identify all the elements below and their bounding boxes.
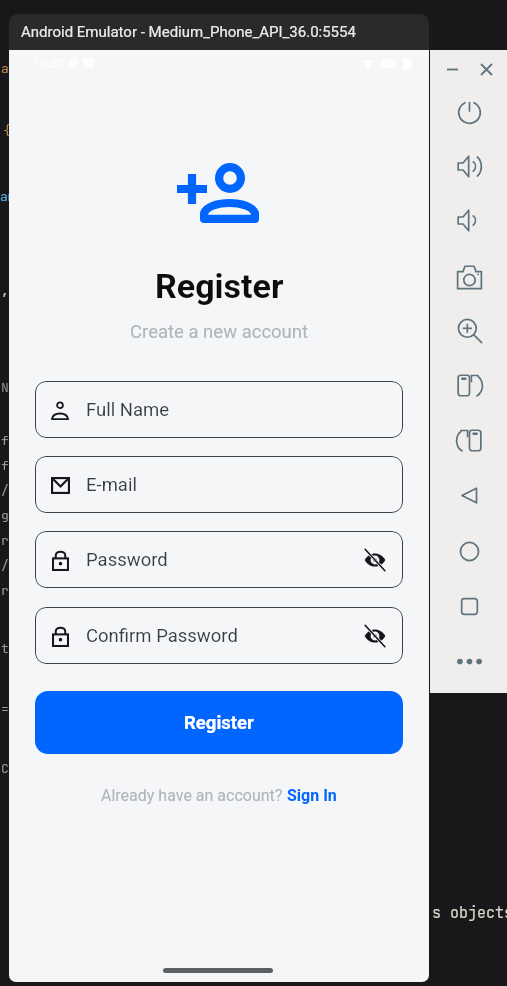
staticText: Create a new account: [130, 321, 309, 343]
staticText: a: [1, 60, 9, 77]
staticText: r: [1, 582, 9, 599]
button[interactable]: Rotate right: [450, 421, 488, 459]
staticText: /: [1, 557, 9, 574]
button[interactable]: Volume down: [450, 201, 488, 239]
button[interactable]: E-mail: [35, 456, 403, 513]
button[interactable]: Overview: [450, 587, 488, 625]
button[interactable]: Power: [450, 93, 488, 131]
staticText: Android Emulator - Medium_Phone_API_36.0…: [21, 23, 356, 41]
button[interactable]: Toggle password visibility: [361, 546, 389, 574]
button[interactable]: Take screenshot: [450, 257, 488, 295]
button[interactable]: Toggle password visibility: [361, 622, 389, 650]
button[interactable]: Rotate left: [450, 366, 488, 404]
button[interactable]: Full Name: [35, 381, 403, 438]
button[interactable]: Close: [472, 55, 500, 83]
staticText: Sign In: [287, 786, 337, 805]
button[interactable]: More: [450, 642, 488, 680]
staticText: r: [1, 532, 9, 549]
staticText: Already have an account?: [101, 786, 287, 805]
staticText: f: [1, 457, 9, 474]
button[interactable]: Home: [450, 532, 488, 570]
button[interactable]: Confirm Password: [35, 607, 403, 664]
staticText: g: [1, 507, 9, 524]
staticText: =: [1, 700, 9, 717]
staticText: {: [3, 122, 11, 139]
staticText: s objects: [432, 903, 507, 923]
staticText: E-mail: [86, 474, 137, 496]
staticText: C: [1, 760, 9, 777]
staticText: /: [1, 482, 9, 499]
staticText: Register: [155, 266, 284, 306]
staticText: N: [1, 379, 9, 396]
staticText: Full Name: [86, 399, 170, 421]
button[interactable]: Sign In: [287, 786, 337, 805]
button[interactable]: Back: [450, 476, 488, 514]
staticText: Password: [86, 549, 168, 571]
button[interactable]: Minimize: [438, 55, 466, 83]
staticText: Confirm Password: [86, 625, 238, 647]
staticText: ,: [1, 282, 9, 299]
staticText: Register: [184, 712, 254, 734]
button[interactable]: Zoom in: [450, 311, 488, 349]
button[interactable]: Register: [35, 691, 403, 754]
staticText: am: [0, 188, 16, 205]
staticText: f: [1, 432, 9, 449]
button[interactable]: Volume up: [450, 147, 488, 185]
button[interactable]: Password: [35, 531, 403, 588]
staticText: t: [1, 640, 9, 657]
